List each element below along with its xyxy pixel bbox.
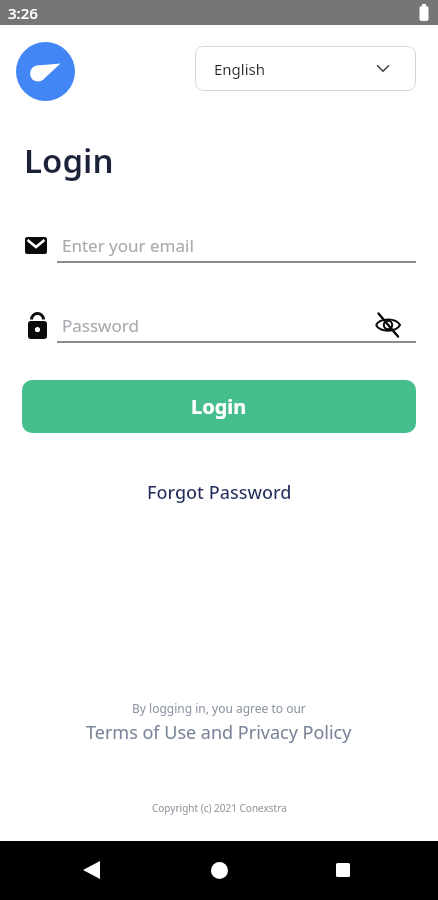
staticText: Copyright (c) 2021 Conexstra [152,801,287,815]
staticText: Login [24,138,114,183]
button[interactable]: Terms of Use and Privacy Policy [86,720,352,745]
button[interactable] [195,846,243,894]
staticText: 3:26 [8,3,38,23]
button[interactable] [68,846,116,894]
button[interactable]: Enter your email [25,230,416,260]
button[interactable]: Forgot Password [147,480,292,505]
button[interactable] [371,308,405,342]
staticText: Terms of Use and Privacy Policy [86,720,352,745]
button[interactable]: Login [22,380,416,433]
staticText: English [214,59,266,79]
button[interactable]: Password [25,308,416,342]
staticText: Login [191,393,247,420]
staticText: Forgot Password [147,480,292,505]
button[interactable] [319,846,367,894]
staticText: By logging in, you agree to our [132,700,306,716]
staticText: Password [62,314,139,337]
button[interactable]: English [195,46,416,91]
staticText: Enter your email [62,234,194,257]
